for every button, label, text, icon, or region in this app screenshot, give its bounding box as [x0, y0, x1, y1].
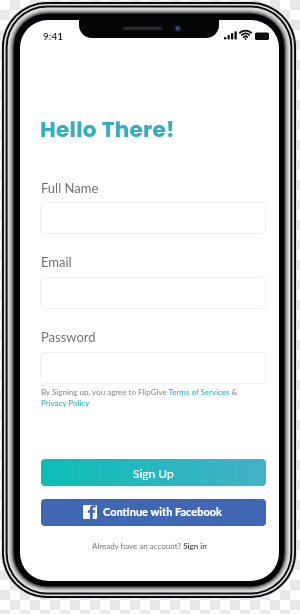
staticText: Password	[41, 329, 96, 345]
staticText: Full Name	[41, 180, 99, 196]
button[interactable]	[40, 202, 266, 234]
button[interactable]: Already have an account? Sign in	[92, 541, 207, 551]
staticText: Email	[41, 254, 72, 270]
button[interactable]	[40, 277, 266, 309]
staticText: 9:41	[43, 30, 63, 42]
staticText: Continue with Facebook	[103, 505, 222, 518]
button[interactable]	[40, 352, 266, 384]
staticText: Sign Up	[133, 466, 174, 480]
button[interactable]: By Signing up, you agree to FlipGive Ter…	[41, 387, 256, 408]
button[interactable]: Sign Up	[41, 459, 266, 486]
staticText: Hello There!	[40, 114, 175, 144]
button[interactable]: Continue with Facebook	[41, 499, 266, 526]
